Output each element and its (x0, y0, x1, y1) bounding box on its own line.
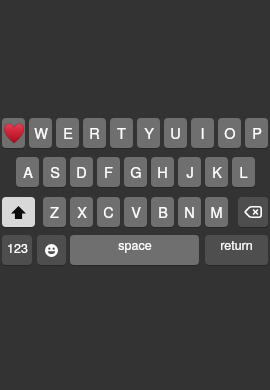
staticText: W (34, 122, 48, 143)
staticText: F (104, 161, 113, 182)
button[interactable]: 123 (2, 235, 32, 265)
button[interactable]: C (97, 197, 120, 227)
button[interactable]: X (70, 197, 93, 227)
button[interactable]: F (97, 157, 120, 187)
staticText: B (158, 201, 168, 222)
staticText: G (130, 161, 142, 182)
button[interactable]: O (218, 118, 241, 148)
button[interactable]: V (124, 197, 147, 227)
staticText: A (23, 161, 33, 182)
button[interactable]: return (205, 235, 268, 265)
button[interactable]: R (83, 118, 106, 148)
staticText: X (77, 201, 87, 222)
staticText: S (50, 161, 60, 182)
button[interactable]: G (124, 157, 147, 187)
staticText: K (212, 161, 222, 182)
staticText: 123 (7, 239, 28, 257)
staticText: space (118, 236, 152, 254)
staticText: Y (144, 122, 154, 143)
button[interactable]: space (70, 235, 199, 265)
staticText: Z (50, 201, 59, 222)
button[interactable]: I (191, 118, 214, 148)
staticText: L (239, 161, 248, 182)
staticText: C (103, 201, 114, 222)
button[interactable]: K (205, 157, 228, 187)
button[interactable]: Heart emoji (2, 118, 25, 148)
button[interactable]: A (16, 157, 39, 187)
button[interactable]: P (245, 118, 268, 148)
button[interactable]: Emoji keyboard (37, 235, 66, 265)
button[interactable]: Shift (2, 197, 35, 227)
staticText: O (224, 122, 236, 143)
staticText: P (252, 122, 262, 143)
button[interactable]: J (178, 157, 201, 187)
button[interactable]: U (164, 118, 187, 148)
button[interactable]: H (151, 157, 174, 187)
button[interactable]: Z (43, 197, 66, 227)
button[interactable]: Backspace (238, 197, 268, 227)
button[interactable]: E (56, 118, 79, 148)
staticText: J (186, 161, 194, 182)
button[interactable]: Y (137, 118, 160, 148)
staticText: N (184, 201, 195, 222)
staticText: H (157, 161, 168, 182)
button[interactable]: B (151, 197, 174, 227)
staticText: U (170, 122, 181, 143)
staticText: M (210, 201, 223, 222)
staticText: R (89, 122, 100, 143)
staticText: V (131, 201, 141, 222)
button[interactable]: N (178, 197, 201, 227)
button[interactable]: D (70, 157, 93, 187)
button[interactable]: M (205, 197, 228, 227)
button[interactable]: T (110, 118, 133, 148)
staticText: T (117, 122, 126, 143)
button[interactable]: L (232, 157, 255, 187)
staticText: D (76, 161, 87, 182)
button[interactable]: S (43, 157, 66, 187)
staticText: E (63, 122, 73, 143)
staticText: I (200, 122, 205, 143)
button[interactable]: W (29, 118, 52, 148)
staticText: return (220, 236, 253, 254)
